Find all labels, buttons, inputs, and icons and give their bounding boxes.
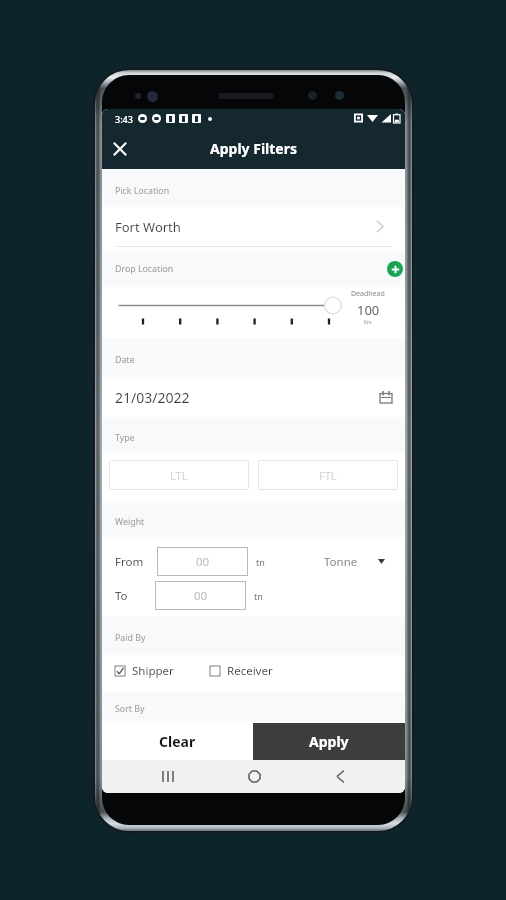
staticText: 100 [357, 301, 380, 319]
staticText: 00 [194, 588, 208, 604]
button[interactable]: Receiver [210, 663, 273, 679]
staticText: Date [115, 354, 135, 366]
button[interactable]: Close [102, 129, 142, 169]
button[interactable]: Shipper [115, 663, 174, 679]
staticText: tn [254, 590, 263, 602]
staticText: Clear [159, 732, 196, 751]
button[interactable]: Home [232, 760, 276, 793]
button[interactable]: Back [318, 760, 362, 793]
staticText: Apply Filters [210, 139, 297, 158]
staticText: Paid By [115, 632, 146, 644]
button[interactable]: FTL [258, 460, 398, 490]
button[interactable]: Recents [146, 760, 190, 793]
button[interactable]: Fort Worth [102, 207, 405, 251]
staticText: From [115, 554, 144, 570]
button[interactable]: Add drop location [387, 261, 403, 277]
button[interactable]: LTL [109, 460, 249, 490]
staticText: Fort Worth [115, 218, 181, 236]
staticText: 3:43 [115, 113, 133, 125]
staticText: FTL [319, 468, 337, 483]
other: Pick date [380, 391, 392, 403]
button[interactable]: 21/03/2022 [102, 377, 405, 417]
staticText: Weight [115, 516, 145, 528]
staticText: Shipper [132, 663, 174, 679]
button[interactable]: Apply [253, 723, 405, 760]
staticText: Km [364, 319, 372, 326]
staticText: 00 [196, 554, 210, 570]
staticText: tn [256, 556, 265, 568]
staticText: Tonne [324, 554, 358, 570]
staticText: Sort By [115, 703, 145, 715]
staticText: Receiver [227, 663, 273, 679]
staticText: LTL [170, 468, 188, 483]
staticText: Pick Location [115, 185, 170, 197]
staticText: Deadhead [351, 289, 385, 299]
staticText: Drop Location [115, 263, 174, 275]
staticText: 21/03/2022 [115, 388, 190, 407]
staticText: To [115, 588, 128, 604]
staticText: Type [115, 432, 135, 444]
button[interactable]: Clear [102, 723, 253, 760]
staticText: Apply [309, 732, 349, 751]
